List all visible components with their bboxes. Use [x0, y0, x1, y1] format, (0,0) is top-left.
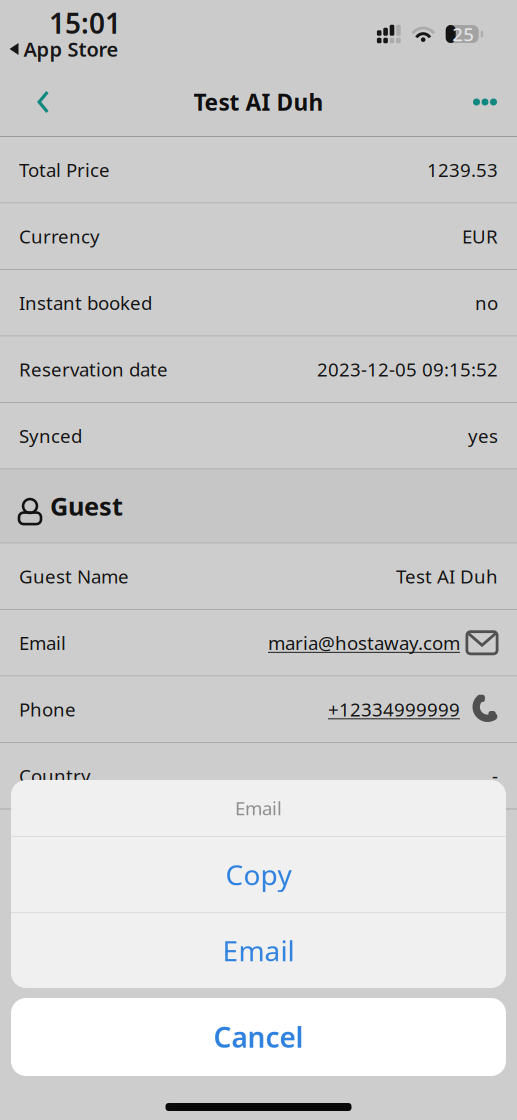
staticText: Synced: [19, 423, 82, 448]
staticText: 25: [452, 22, 474, 46]
staticText: Guest: [50, 489, 123, 523]
button[interactable]: Back to App Store: [9, 36, 118, 62]
staticText: Email: [19, 630, 66, 655]
staticText: Total Price: [19, 157, 110, 182]
staticText: 2023-12-05 09:15:52: [317, 357, 498, 382]
button[interactable]: Email: [11, 913, 506, 988]
button[interactable]: maria@hostaway.com: [268, 610, 460, 675]
button[interactable]: Back: [13, 73, 73, 131]
staticText: Reservation date: [19, 357, 168, 382]
staticText: App Store: [23, 36, 118, 62]
button[interactable]: Copy: [11, 837, 506, 912]
staticText: Guest Name: [19, 564, 129, 589]
staticText: Test AI Duh: [193, 87, 323, 117]
staticText: yes: [468, 423, 498, 448]
button[interactable]: Cancel: [11, 998, 506, 1076]
staticText: Instant booked: [19, 290, 152, 315]
staticText: EUR: [462, 224, 498, 249]
staticText: 1239.53: [427, 157, 498, 182]
staticText: Country: [19, 763, 91, 788]
staticText: Test AI Duh: [396, 564, 498, 589]
staticText: Currency: [19, 224, 100, 249]
staticText: Copy: [225, 856, 291, 893]
button[interactable]: More options: [455, 73, 515, 131]
staticText: maria@hostaway.com: [268, 630, 460, 655]
button[interactable]: Send email: [460, 610, 504, 675]
button[interactable]: Call: [460, 676, 504, 742]
button[interactable]: +12334999999: [328, 676, 460, 742]
staticText: Email: [222, 932, 294, 969]
staticText: Phone: [19, 697, 76, 722]
staticText: Cancel: [213, 1018, 303, 1056]
staticText: no: [475, 290, 498, 315]
staticText: 15:01: [49, 4, 121, 42]
staticText: -: [492, 763, 498, 788]
staticText: Email: [235, 796, 282, 820]
staticText: +12334999999: [328, 697, 460, 722]
